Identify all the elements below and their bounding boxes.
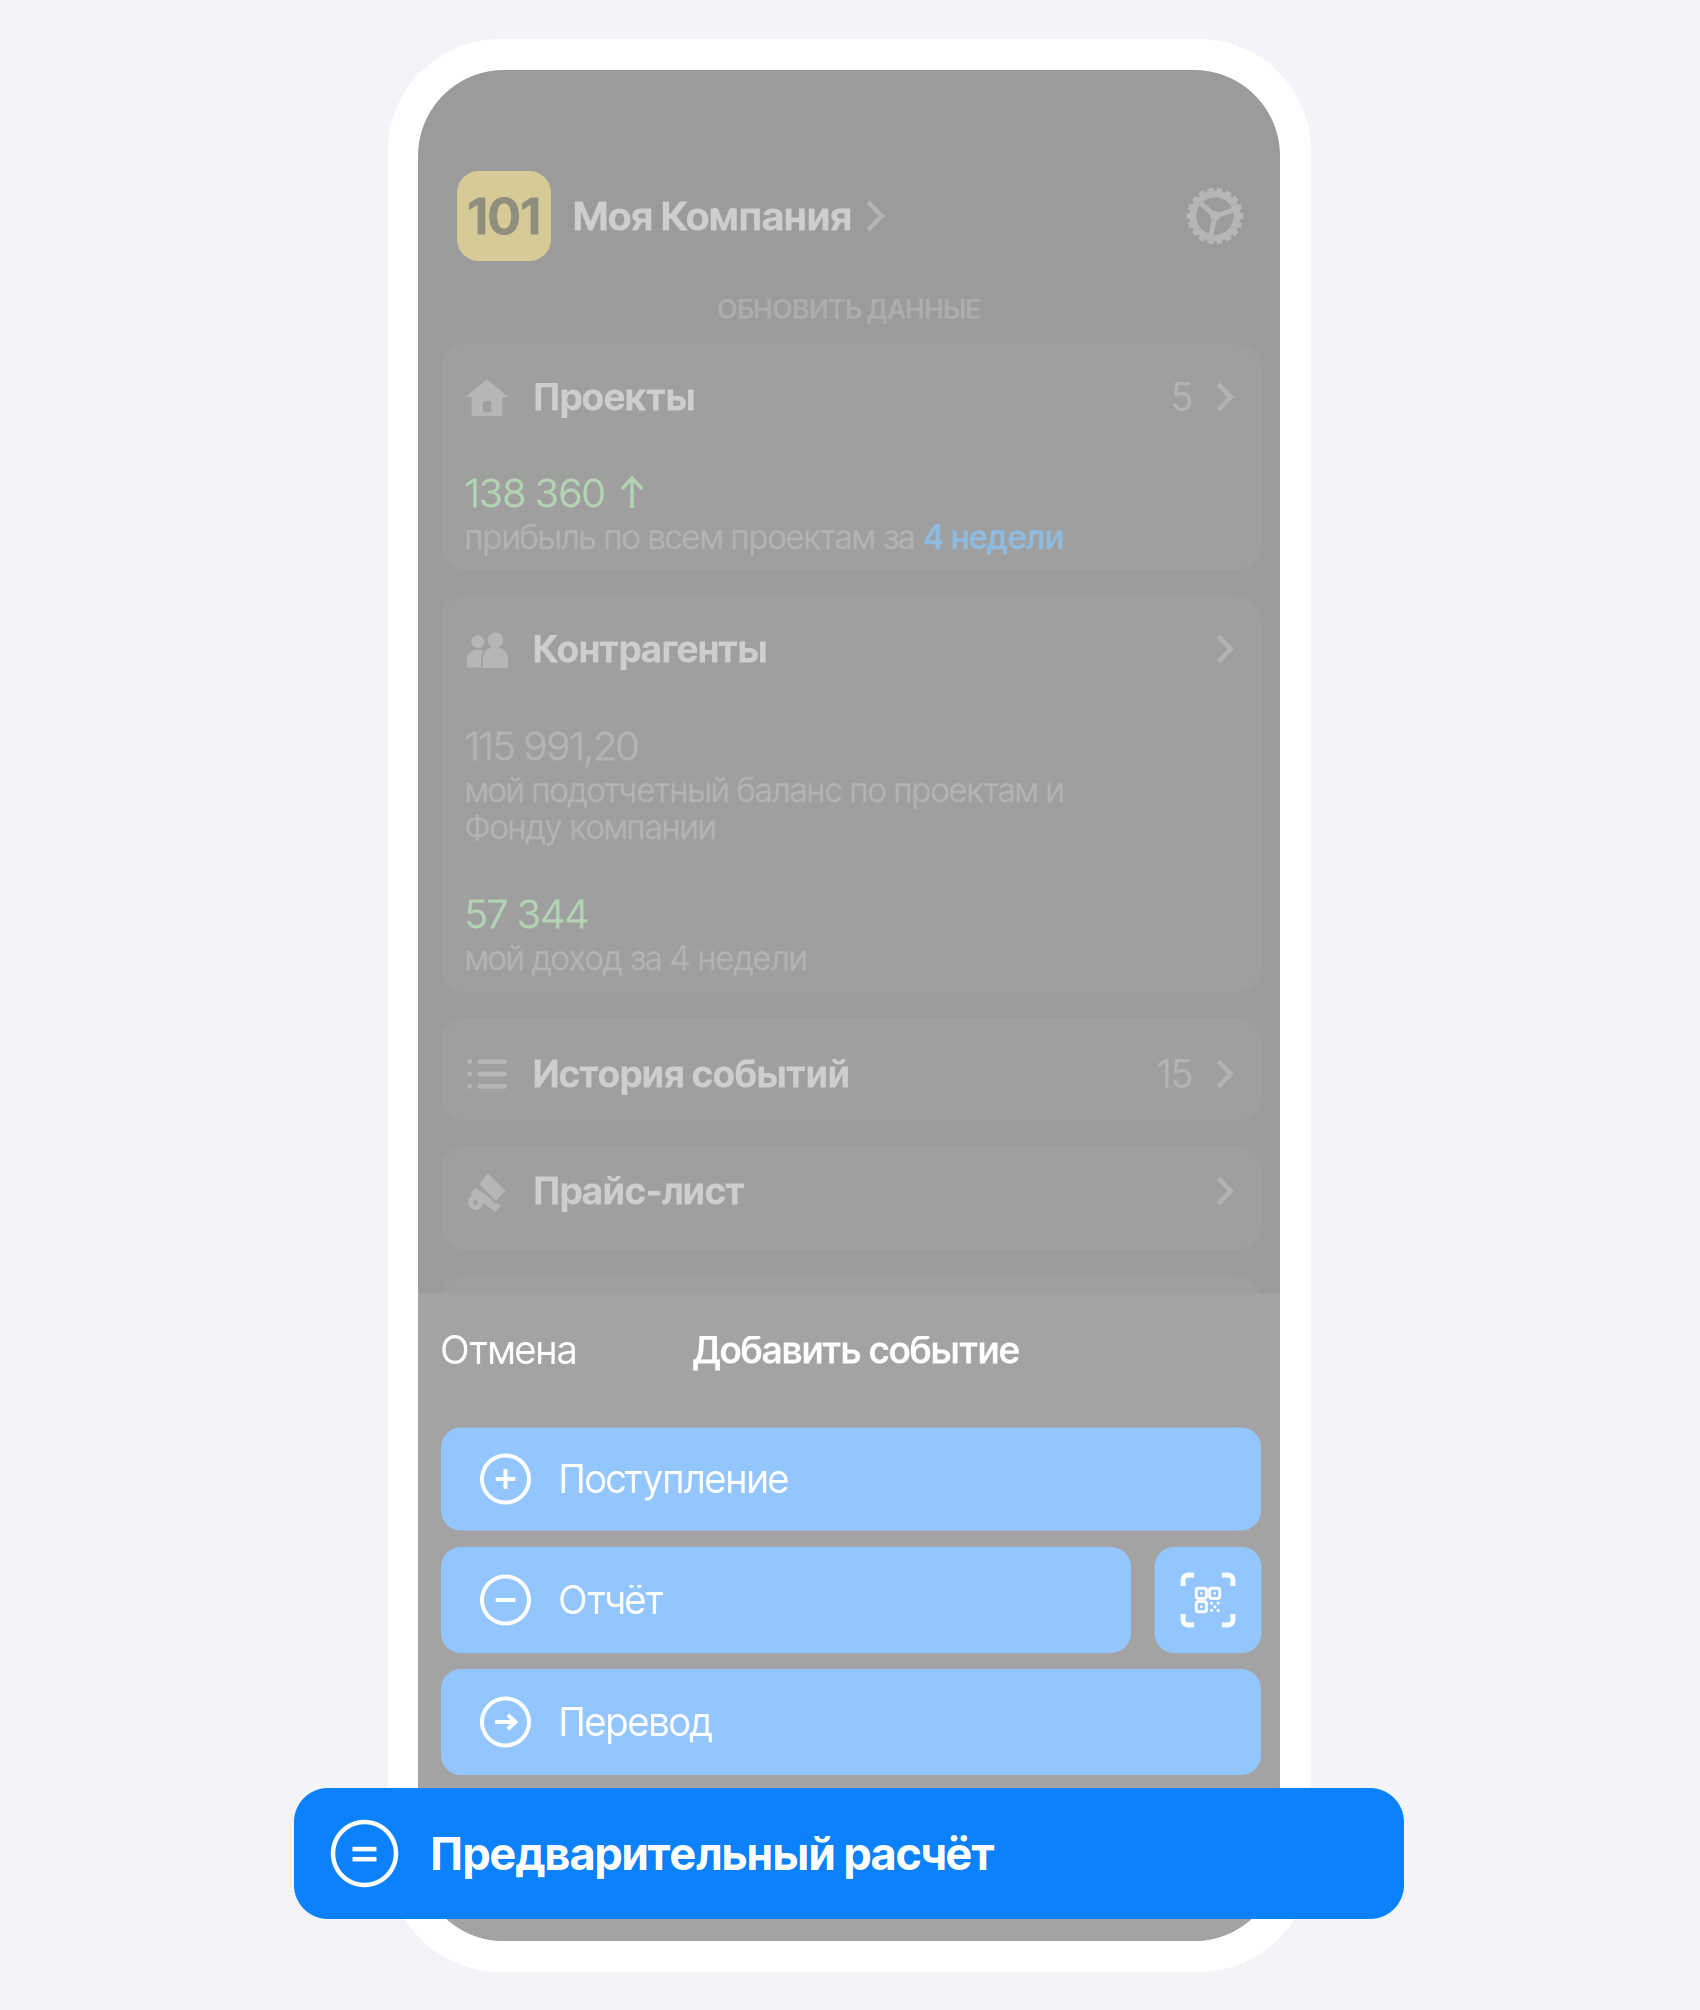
button[interactable]: История событий	[441, 1028, 1261, 1120]
button[interactable]: Поступление	[441, 1427, 1261, 1530]
staticText: Проекты	[533, 374, 695, 420]
staticText: мой подотчетный баланс по проектам и	[465, 770, 1064, 810]
staticText: 15	[1157, 1051, 1192, 1097]
button[interactable]: Контрагенты	[441, 603, 1261, 695]
button[interactable]: Проекты	[441, 351, 1261, 443]
staticText: Поступление	[559, 1456, 789, 1502]
staticText: 5	[1171, 374, 1192, 420]
staticText: Предварительный расчёт	[430, 1826, 995, 1881]
staticText: прибыль по всем проектам за	[465, 517, 923, 557]
staticText: 101	[467, 185, 540, 247]
staticText: 115 991,20	[465, 722, 639, 770]
staticText: 57 344	[465, 890, 589, 938]
staticText: Моя Компания	[573, 192, 852, 240]
staticText: 138 360	[465, 469, 605, 517]
button[interactable]: Сканировать код	[1154, 1547, 1261, 1653]
staticText: Контрагенты	[533, 626, 767, 672]
staticText: Фонду компании	[465, 807, 716, 847]
button[interactable]: Настройки	[1186, 187, 1244, 245]
staticText: ОБНОВИТЬ ДАННЫЕ	[717, 293, 980, 325]
button[interactable]: Отмена	[441, 1319, 641, 1381]
button[interactable]: Прайс-лист	[441, 1145, 1261, 1237]
staticText: Добавить событие	[693, 1327, 1020, 1373]
button[interactable]: Предварительный расчёт	[294, 1788, 1404, 1919]
button[interactable]: Перевод	[441, 1669, 1261, 1775]
staticText: 4 недели	[923, 517, 1064, 557]
staticText: Отмена	[441, 1327, 577, 1373]
staticText: Прайс-лист	[533, 1168, 745, 1214]
staticText: Отчёт	[559, 1577, 664, 1623]
button[interactable]: Отчёт	[441, 1547, 1131, 1653]
button[interactable]: 101	[457, 171, 884, 261]
staticText: История событий	[533, 1051, 850, 1097]
staticText: мой доход за 4 недели	[465, 938, 807, 978]
staticText: Перевод	[559, 1699, 712, 1745]
